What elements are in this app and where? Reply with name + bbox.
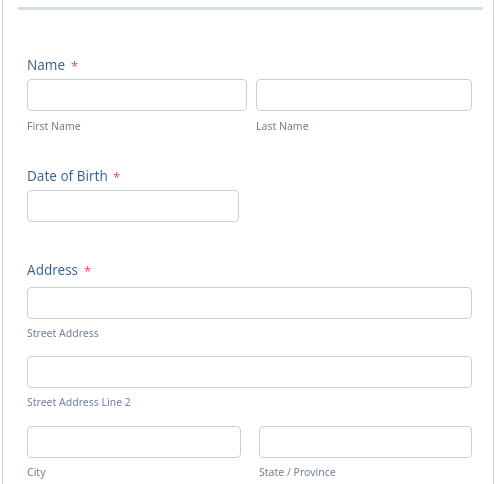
staticText: * — [113, 168, 121, 186]
staticText: * — [71, 57, 79, 75]
button[interactable]: Text input field — [27, 356, 472, 388]
staticText: Street Address Line 2 — [27, 395, 131, 409]
button[interactable]: Text input field — [27, 426, 241, 458]
staticText: Street Address — [27, 326, 99, 340]
staticText: Date of Birth — [27, 167, 108, 185]
button[interactable]: Text input field — [27, 287, 472, 319]
staticText: * — [84, 262, 92, 280]
button[interactable]: Text input field — [259, 426, 472, 458]
button[interactable]: Text input field — [27, 79, 247, 111]
staticText: Last Name — [256, 119, 309, 133]
staticText: Name — [27, 56, 66, 74]
staticText: City — [27, 465, 46, 479]
staticText: First Name — [27, 119, 81, 133]
staticText: Address — [27, 261, 79, 279]
button[interactable]: Text input field — [27, 190, 239, 222]
button[interactable]: Text input field — [256, 79, 472, 111]
staticText: State / Province — [259, 465, 336, 479]
